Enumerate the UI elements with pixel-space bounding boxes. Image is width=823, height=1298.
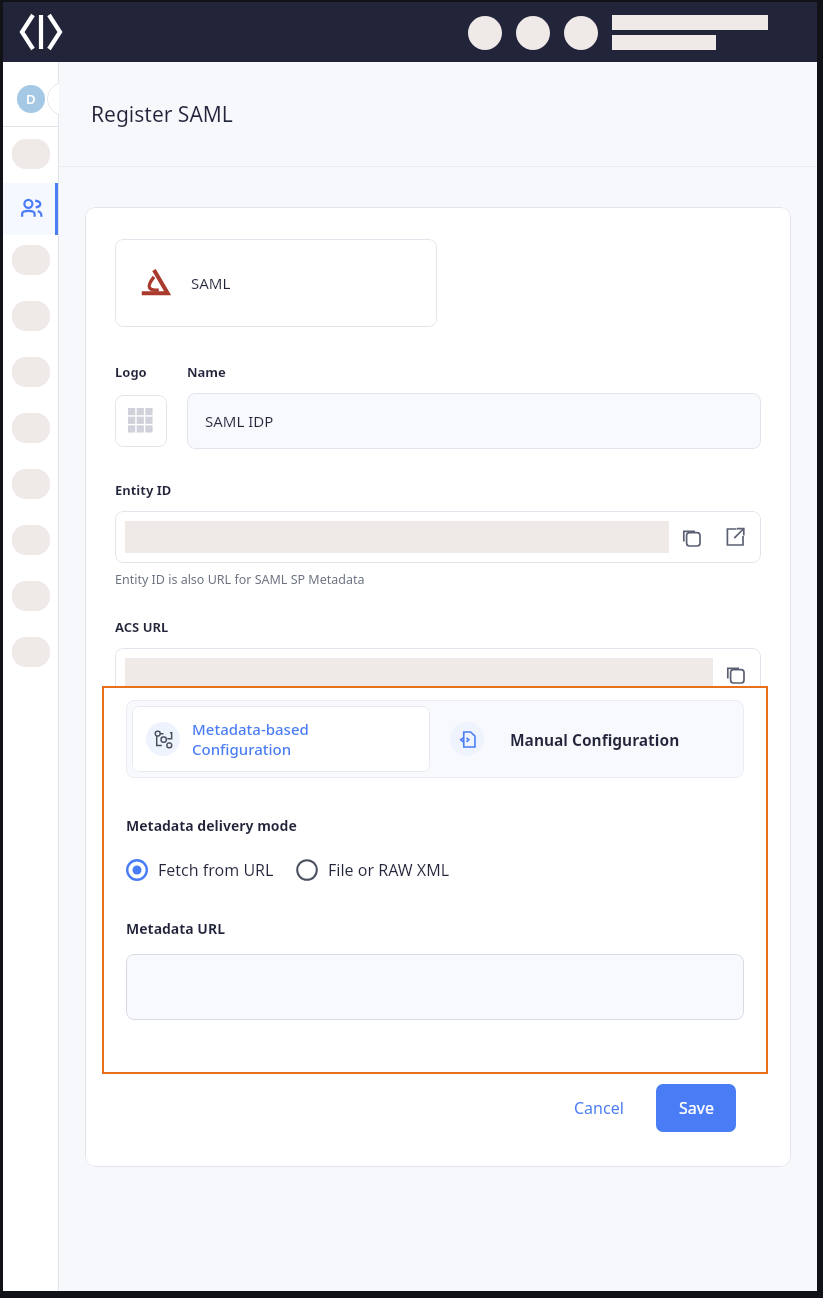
button[interactable]: Metadata-based Configuration bbox=[132, 706, 430, 772]
button[interactable]: Copy bbox=[669, 515, 713, 559]
button[interactable]: Item bbox=[12, 581, 50, 611]
staticText: Name bbox=[187, 363, 226, 381]
staticText: Save bbox=[679, 1097, 714, 1119]
button[interactable] bbox=[126, 954, 744, 1020]
button[interactable]: Fetch from URL bbox=[126, 859, 274, 881]
button[interactable]: SAML bbox=[115, 239, 437, 327]
button[interactable]: Avatar bbox=[516, 16, 550, 50]
button[interactable]: Users bbox=[3, 183, 59, 235]
staticText: Metadata delivery mode bbox=[126, 816, 297, 835]
staticText: Metadata-based Configuration bbox=[192, 719, 309, 759]
button[interactable]: Item bbox=[12, 301, 50, 331]
button[interactable]: Home bbox=[19, 10, 63, 54]
staticText: Register SAML bbox=[91, 100, 233, 129]
button[interactable]: Logo bbox=[115, 395, 167, 447]
staticText: Metadata URL bbox=[126, 919, 225, 938]
button[interactable]: Item bbox=[12, 637, 50, 667]
button[interactable]: Manual Configuration bbox=[436, 700, 744, 778]
staticText: Logo bbox=[115, 363, 147, 381]
staticText: Entity ID is also URL for SAML SP Metada… bbox=[115, 571, 365, 588]
staticText: File or RAW XML bbox=[328, 859, 450, 881]
button[interactable]: Item bbox=[12, 245, 50, 275]
staticText: Cancel bbox=[574, 1097, 624, 1119]
button[interactable]: Open in new window bbox=[713, 515, 757, 559]
button[interactable]: Avatar bbox=[468, 16, 502, 50]
button[interactable]: Item bbox=[12, 413, 50, 443]
button[interactable]: Cancel bbox=[560, 1084, 638, 1132]
button[interactable]: Item bbox=[12, 469, 50, 499]
button[interactable]: Item bbox=[12, 357, 50, 387]
button[interactable]: Save bbox=[656, 1084, 736, 1132]
staticText: Manual Configuration bbox=[510, 729, 680, 750]
button[interactable]: Workspace bbox=[8, 72, 54, 126]
staticText: SAML IDP bbox=[205, 411, 274, 431]
button[interactable]: Expand menu bbox=[47, 82, 81, 116]
button[interactable]: Item bbox=[12, 525, 50, 555]
button[interactable]: Avatar bbox=[564, 16, 598, 50]
staticText: SAML bbox=[191, 273, 231, 293]
button[interactable]: File or RAW XML bbox=[296, 859, 450, 881]
staticText: Entity ID bbox=[115, 481, 172, 499]
button[interactable]: Copy bbox=[713, 652, 757, 696]
staticText: D bbox=[26, 90, 36, 108]
button[interactable]: Item bbox=[12, 139, 50, 169]
staticText: ACS URL bbox=[115, 618, 169, 636]
staticText: Fetch from URL bbox=[158, 859, 274, 881]
button[interactable]: SAML IDP bbox=[187, 393, 761, 449]
